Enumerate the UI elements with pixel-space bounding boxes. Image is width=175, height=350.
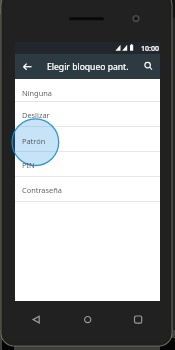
button[interactable]: Recent apps	[128, 310, 148, 330]
button[interactable]: Back	[26, 310, 46, 330]
button[interactable]: Home	[78, 310, 98, 330]
staticText: Contraseña	[22, 185, 62, 195]
staticText: Elegir bloqueo pant.	[47, 61, 129, 73]
staticText: Deslizar	[22, 110, 50, 120]
button[interactable]	[15, 102, 160, 127]
button[interactable]: Search	[138, 56, 159, 77]
button[interactable]	[15, 79, 160, 102]
button[interactable]: Back	[17, 56, 38, 77]
button[interactable]	[15, 152, 160, 177]
staticText: PIN	[22, 160, 35, 170]
staticText: Ninguna	[22, 88, 52, 98]
button[interactable]	[15, 177, 160, 202]
staticText: 10:00	[141, 44, 159, 54]
button[interactable]	[15, 127, 160, 152]
staticText: Patrón	[22, 136, 46, 146]
